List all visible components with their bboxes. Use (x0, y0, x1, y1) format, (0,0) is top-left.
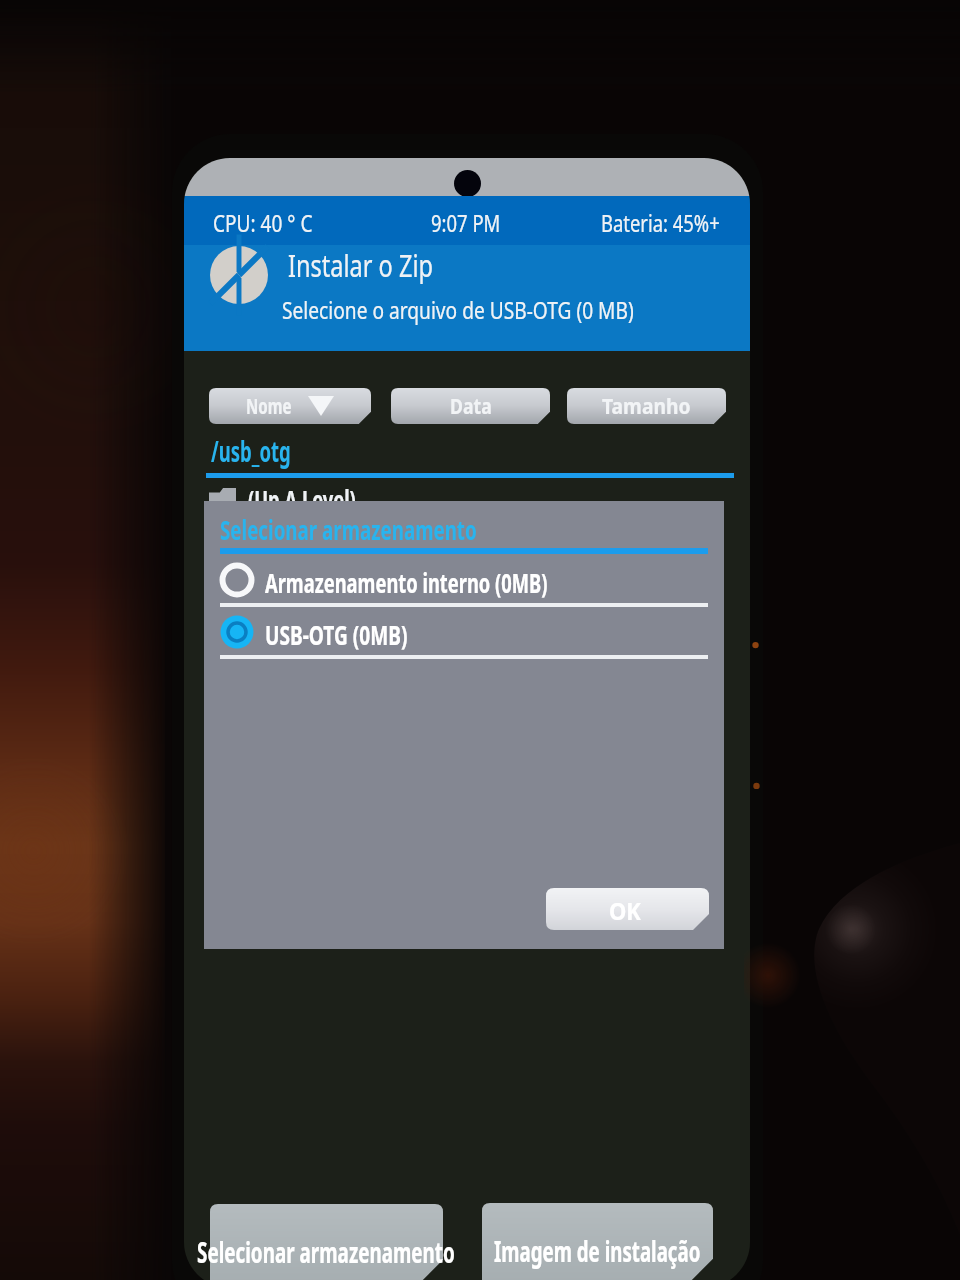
button[interactable] (220, 555, 708, 607)
button[interactable] (209, 479, 509, 519)
button[interactable] (220, 607, 708, 659)
button[interactable]: Imagem de instalação (482, 1203, 713, 1280)
button[interactable] (391, 388, 550, 424)
button[interactable]: Selecionar armazenamento (210, 1204, 443, 1280)
button[interactable] (567, 388, 726, 424)
button[interactable] (209, 388, 371, 424)
button[interactable] (184, 245, 750, 351)
button[interactable]: OK (546, 888, 709, 930)
